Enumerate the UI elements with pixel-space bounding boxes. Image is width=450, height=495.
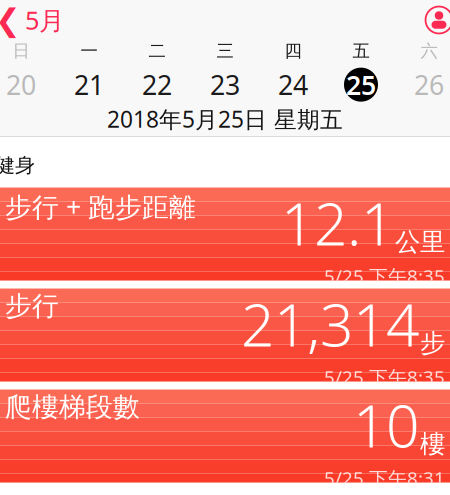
staticText: 5/25 下午8:31 xyxy=(324,466,445,490)
button[interactable]: 四 xyxy=(263,40,323,102)
staticText: 公里 xyxy=(395,226,445,258)
button[interactable]: 二 xyxy=(127,40,187,102)
staticText: 四 xyxy=(284,40,301,62)
staticText: 23 xyxy=(210,67,240,102)
staticText: 21 xyxy=(74,67,104,102)
staticText: 一 xyxy=(80,40,97,62)
button[interactable]: 步行 xyxy=(0,289,450,382)
button[interactable]: 三 xyxy=(195,40,255,102)
button[interactable]: 爬樓梯段數 xyxy=(0,390,450,483)
staticText: 5月 xyxy=(25,3,64,37)
button[interactable]: 五 xyxy=(331,40,391,102)
button[interactable]: 六 xyxy=(399,40,450,102)
staticText: 5/25 下午8:35 xyxy=(324,264,445,288)
staticText: 步行 + 跑步距離 xyxy=(5,189,196,224)
staticText: 24 xyxy=(278,67,308,102)
staticText: ❮ xyxy=(0,3,21,37)
button[interactable]: 個人檔案 xyxy=(419,1,450,39)
staticText: 步 xyxy=(420,327,445,359)
staticText: 20 xyxy=(6,67,36,102)
staticText: 22 xyxy=(142,67,172,102)
staticText: 26 xyxy=(414,67,444,102)
staticText: 五 xyxy=(352,40,369,62)
staticText: 健身 xyxy=(0,153,35,178)
staticText: 21,314 xyxy=(241,285,419,363)
staticText: 5/25 下午8:35 xyxy=(324,365,445,389)
button[interactable]: 步行 + 跑步距離 xyxy=(0,188,450,281)
staticText: 步行 xyxy=(5,290,59,322)
staticText: 二 xyxy=(148,40,165,62)
staticText: 三 xyxy=(216,40,233,62)
staticText: 10 xyxy=(353,386,419,464)
button[interactable]: 一 xyxy=(59,40,119,102)
button[interactable]: 日 xyxy=(0,40,51,102)
staticText: 12.1 xyxy=(281,184,394,262)
staticText: 25 xyxy=(346,67,376,102)
staticText: 2018年5月25日 星期五 xyxy=(107,104,343,134)
button[interactable]: ❮ xyxy=(0,1,74,39)
staticText: 六 xyxy=(420,40,437,62)
staticText: 日 xyxy=(12,40,29,62)
staticText: 爬樓梯段數 xyxy=(5,391,140,423)
staticText: 樓 xyxy=(420,428,445,460)
